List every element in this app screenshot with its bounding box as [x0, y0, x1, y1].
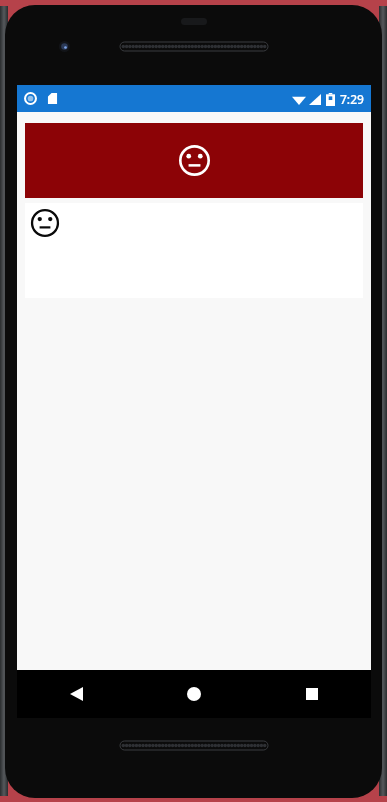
button[interactable]: Neutral mood [25, 123, 363, 198]
button[interactable]: Neutral mood [25, 203, 363, 298]
staticText: 7:29 [340, 91, 364, 107]
other: Neutral mood [30, 208, 60, 238]
button[interactable]: Home [135, 670, 253, 718]
button[interactable]: Recent apps [253, 670, 371, 718]
button[interactable]: Back [17, 670, 135, 718]
